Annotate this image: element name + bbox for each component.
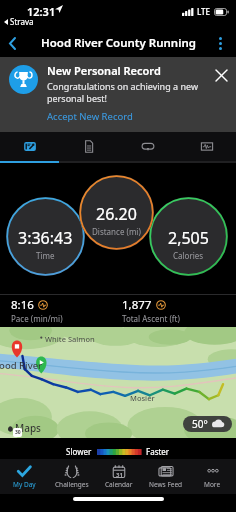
staticText: 1,877: [122, 297, 152, 313]
staticText: New Personal Record: [47, 63, 161, 78]
staticText: 26.20: [96, 203, 137, 225]
staticText: Maps: [15, 421, 41, 435]
staticText: Faster: [146, 446, 170, 457]
button[interactable]: More: [189, 459, 236, 494]
button[interactable]: Challenges: [48, 459, 95, 494]
staticText: Time: [36, 250, 55, 261]
staticText: Total Ascent (ft): [122, 313, 180, 324]
staticText: Distance (mi): [92, 226, 141, 237]
staticText: 30: [15, 429, 21, 436]
staticText: 2,505: [168, 227, 209, 249]
button[interactable]: 50°: [183, 416, 232, 432]
staticText: Accept New Record: [47, 110, 133, 123]
staticText: Pace (min/mi): [11, 313, 63, 324]
button[interactable]: Accept New Record: [47, 110, 133, 123]
staticText: 50°: [192, 417, 208, 431]
staticText: Mosier: [130, 393, 155, 403]
staticText: 12:31: [27, 4, 56, 19]
button[interactable]: 31: [95, 459, 142, 494]
staticText: Congratulations on achieving a new perso…: [47, 80, 198, 105]
button[interactable]: My Day: [0, 459, 48, 494]
staticText: News Feed: [149, 480, 183, 489]
staticText: Calendar: [105, 480, 133, 489]
staticText: Slower: [66, 446, 92, 457]
staticText: 3:36:43: [18, 227, 73, 249]
staticText: 31: [116, 471, 123, 479]
button[interactable]: Analysis: [177, 132, 236, 161]
staticText: White Salmon: [45, 334, 95, 344]
button[interactable]: News Feed: [142, 459, 189, 494]
staticText: My Day: [13, 480, 36, 489]
staticText: Strava: [10, 16, 34, 27]
staticText: More: [204, 480, 221, 489]
button[interactable]: Dismiss: [211, 65, 231, 85]
staticText: 8:16: [11, 297, 34, 313]
staticText: Calories: [173, 250, 204, 261]
button[interactable]: Splits: [59, 132, 118, 161]
staticText: Hood River: [0, 359, 43, 372]
button[interactable]: Laps: [118, 132, 177, 161]
button[interactable]: More options: [209, 32, 231, 54]
button[interactable]: Overview: [0, 132, 59, 161]
staticText: Hood River County Running: [41, 35, 196, 51]
staticText: LTE: [197, 6, 211, 17]
staticText: Challenges: [55, 480, 89, 489]
button[interactable]: Back: [1, 32, 23, 54]
